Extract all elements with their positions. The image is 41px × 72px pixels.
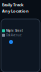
staticText: Any Location (2, 8, 29, 14)
staticText: Oak Avenue (6, 33, 22, 37)
staticText: Easily Track (2, 2, 23, 7)
staticText: Maple Street (6, 29, 23, 32)
